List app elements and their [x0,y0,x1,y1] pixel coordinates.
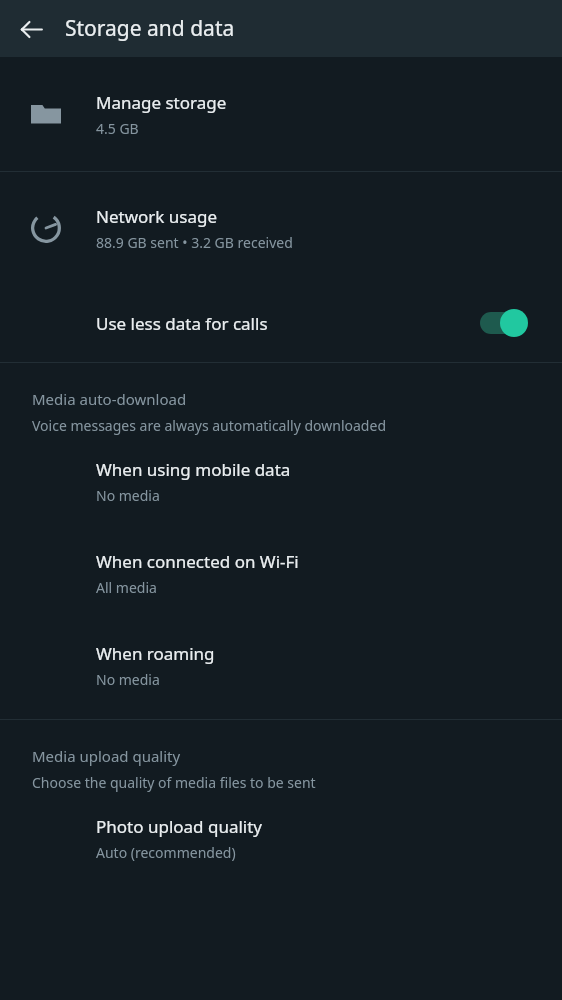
staticText: Auto (recommended) [96,843,236,862]
staticText: All media [96,578,157,597]
staticText: Storage and data [65,14,235,43]
staticText: Choose the quality of media files to be … [32,773,316,792]
button[interactable]: Manage storage [0,57,562,171]
staticText: Photo upload quality [96,815,263,838]
staticText: When roaming [96,642,215,665]
button[interactable]: Use less data for calls [0,284,562,362]
staticText: No media [96,486,160,505]
staticText: No media [96,670,160,689]
button[interactable]: When roaming [0,619,562,711]
button[interactable]: Photo upload quality [0,792,562,884]
staticText: 4.5 GB [96,119,139,138]
staticText: Manage storage [96,91,227,114]
button[interactable]: When using mobile data [0,435,562,527]
staticText: Media upload quality [32,746,181,766]
staticText: 88.9 GB sent • 3.2 GB received [96,233,293,252]
staticText: Network usage [96,205,218,228]
staticText: When connected on Wi-Fi [96,550,299,573]
button[interactable]: When connected on Wi-Fi [0,527,562,619]
staticText: When using mobile data [96,458,291,481]
staticText: Use less data for calls [96,312,268,335]
button[interactable]: Network usage [0,172,562,284]
button[interactable]: Back [10,8,52,50]
staticText: Voice messages are always automatically … [32,416,386,435]
staticText: Media auto-download [32,389,187,409]
